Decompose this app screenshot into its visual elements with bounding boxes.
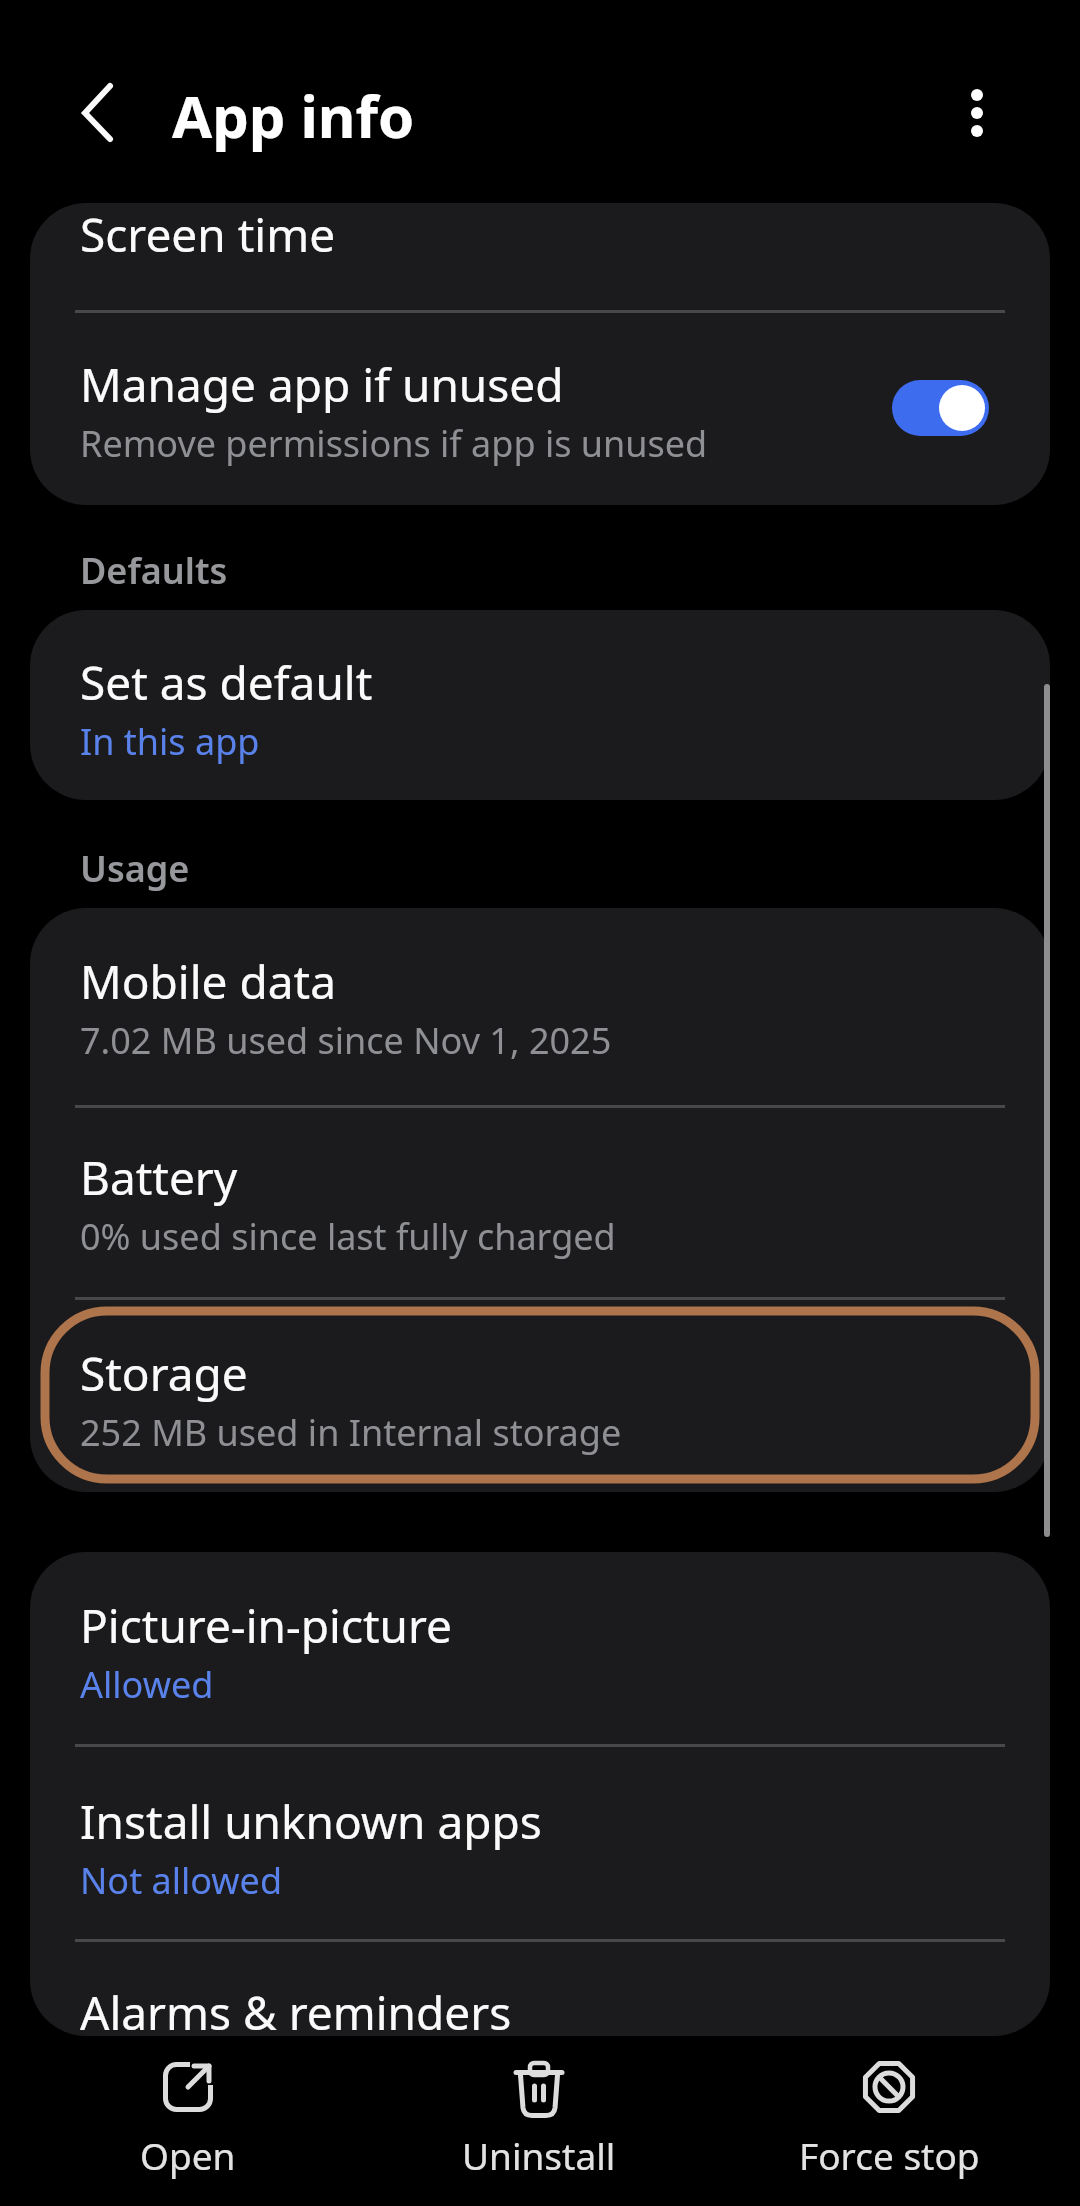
- staticText: Alarms & reminders: [80, 1981, 512, 2044]
- button[interactable]: [892, 380, 989, 436]
- button[interactable]: [30, 1746, 1050, 1940]
- button[interactable]: [30, 311, 1050, 505]
- staticText: Set as default: [80, 651, 373, 714]
- staticText: Mobile data: [80, 950, 336, 1013]
- staticText: Battery: [80, 1146, 238, 1209]
- staticText: App info: [172, 76, 415, 155]
- staticText: 0% used since last fully charged: [80, 1212, 616, 1261]
- button[interactable]: [30, 610, 1050, 800]
- button[interactable]: [464, 2046, 614, 2196]
- button[interactable]: [30, 908, 1050, 1106]
- staticText: Allowed: [80, 1660, 214, 1709]
- button[interactable]: [113, 2046, 263, 2196]
- button[interactable]: [30, 1106, 1050, 1298]
- staticText: Open: [140, 2130, 236, 2180]
- staticText: 7.02 MB used since Nov 1, 2025: [80, 1016, 612, 1065]
- staticText: Manage app if unused: [80, 353, 564, 416]
- staticText: Remove permissions if app is unused: [80, 419, 708, 468]
- button[interactable]: [814, 2046, 964, 2196]
- button[interactable]: [30, 1940, 1050, 2036]
- button[interactable]: [30, 1552, 1050, 1746]
- staticText: Install unknown apps: [80, 1790, 542, 1853]
- staticText: In this app: [80, 717, 260, 766]
- button[interactable]: [945, 75, 1009, 155]
- staticText: Force stop: [799, 2130, 980, 2180]
- staticText: Usage: [80, 844, 190, 893]
- staticText: Not allowed: [80, 1856, 283, 1905]
- staticText: Picture-in-picture: [80, 1594, 453, 1657]
- staticText: Storage: [80, 1342, 248, 1405]
- staticText: Uninstall: [462, 2130, 616, 2180]
- button[interactable]: [30, 1298, 1050, 1492]
- staticText: 252 MB used in Internal storage: [80, 1408, 622, 1457]
- button[interactable]: [60, 80, 140, 150]
- staticText: Defaults: [80, 546, 228, 595]
- button[interactable]: [30, 203, 1050, 311]
- staticText: Screen time: [80, 203, 336, 266]
